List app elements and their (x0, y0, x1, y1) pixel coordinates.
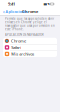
staticText: Chrome (22, 9, 38, 14)
button[interactable]: Chrome (3, 38, 57, 44)
staticText: 9:41 (8, 1, 15, 7)
staticText: Aplicaciones (5, 9, 27, 14)
button[interactable]: Safari (3, 44, 57, 50)
staticText: APLICACIÓN DE NAVEGADOR (5, 33, 44, 37)
staticText: Safari (11, 45, 21, 50)
button[interactable]: ‹ (3, 8, 27, 15)
staticText: Chrome (11, 38, 26, 44)
staticText: Mis archivos (11, 51, 34, 57)
staticText: ▮▮▮ (44, 2, 47, 5)
staticText: ‹ (3, 8, 5, 15)
staticText: ◥ (47, 2, 49, 5)
button[interactable]: Mis archivos (3, 51, 57, 57)
staticText: Permite que las apps soliciten abrir enl… (5, 17, 55, 31)
